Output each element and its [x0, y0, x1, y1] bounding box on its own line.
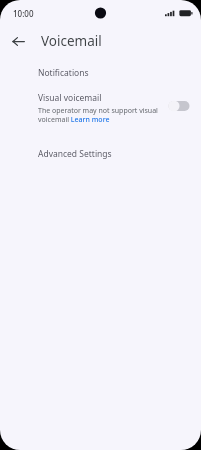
staticText: 10:00: [13, 8, 34, 19]
staticText: Advanced Settings: [38, 148, 112, 160]
staticText: The operator may not support visual voic…: [38, 106, 160, 124]
button[interactable]: Visual voicemail toggle: [166, 98, 192, 114]
button[interactable]: Back: [7, 30, 29, 52]
button[interactable]: Advanced Settings: [0, 142, 201, 166]
staticText: Notifications: [38, 67, 89, 79]
button[interactable]: Visual voicemail: [0, 91, 201, 130]
staticText: Visual voicemail: [38, 92, 102, 104]
button[interactable]: Notifications: [0, 60, 201, 86]
staticText: Voicemail: [41, 32, 102, 50]
